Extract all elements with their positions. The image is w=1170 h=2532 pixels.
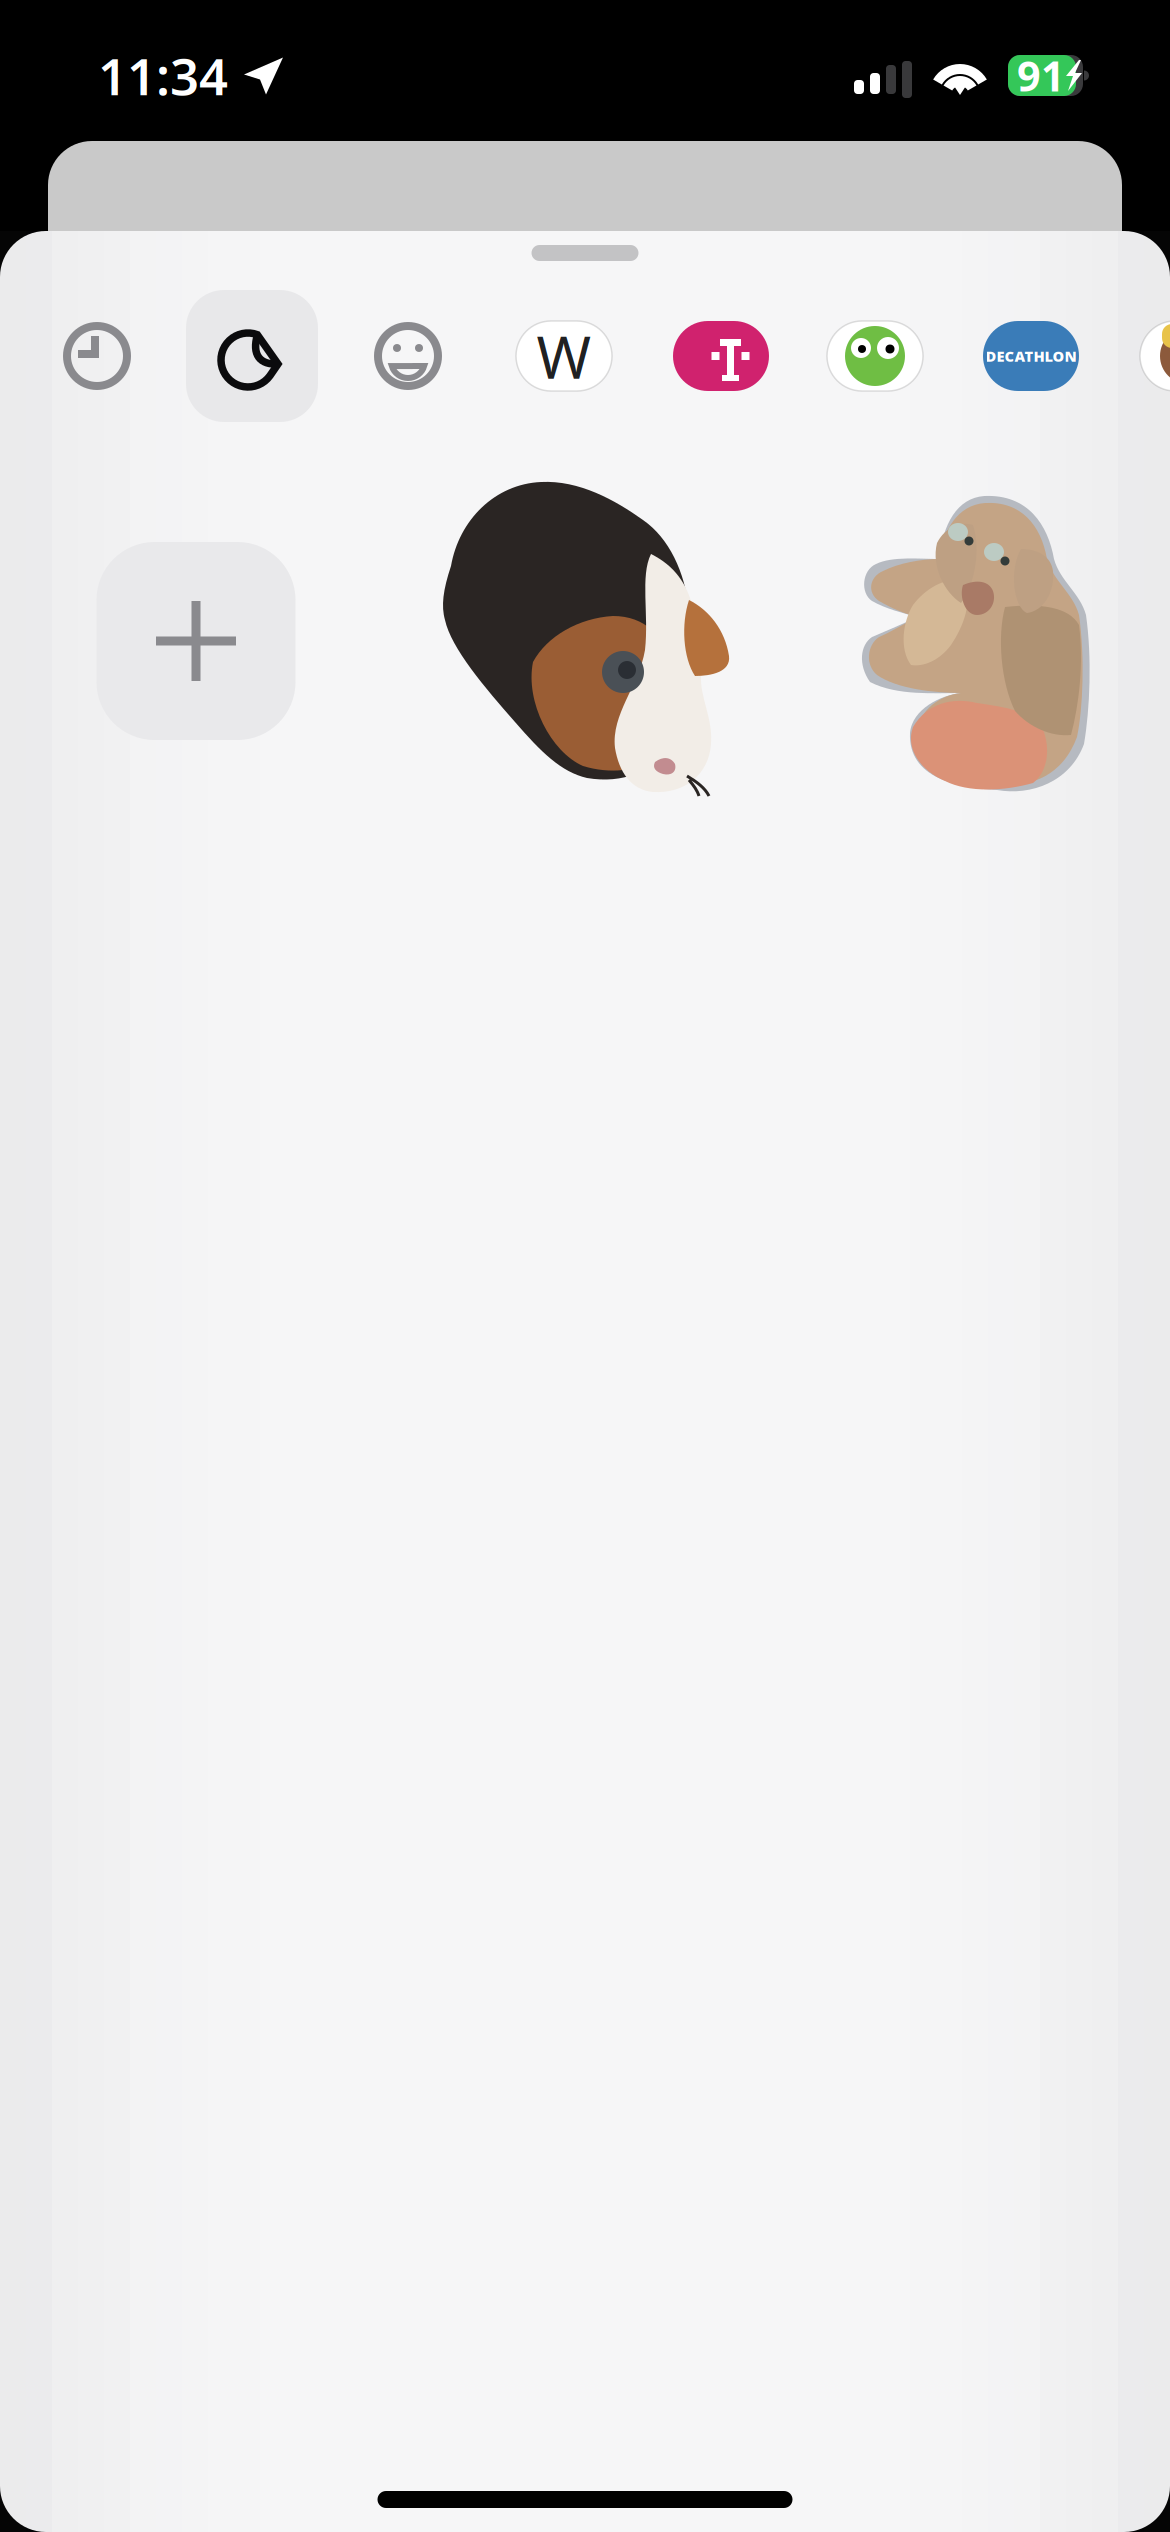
staticText: DECATHLON (985, 346, 1076, 366)
staticText: ★ (1168, 339, 1170, 369)
staticText: 11:34 (98, 42, 228, 109)
button[interactable] (809, 290, 941, 422)
staticText: 91 (1017, 48, 1065, 103)
button[interactable]: Add sticker (96, 542, 295, 740)
button[interactable] (655, 290, 787, 422)
button[interactable]: W (498, 290, 630, 422)
button[interactable] (186, 290, 318, 422)
button[interactable] (31, 290, 163, 422)
staticText: W (536, 317, 591, 395)
button[interactable]: Guinea pig sticker (437, 480, 731, 796)
button[interactable]: ★ (1122, 290, 1170, 422)
button[interactable] (342, 290, 474, 422)
button[interactable]: Dog sticker (865, 497, 1089, 787)
button[interactable]: DECATHLON (965, 290, 1097, 422)
